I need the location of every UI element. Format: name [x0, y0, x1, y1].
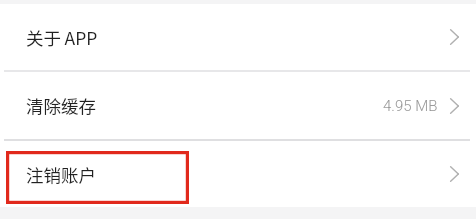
other: Open 注销账户 — [449, 166, 460, 182]
other: Open 关于 APP — [449, 29, 460, 45]
staticText: 清除缓存 — [26, 93, 96, 118]
staticText: 4.95 MB — [383, 97, 438, 115]
staticText: 关于 APP — [26, 25, 98, 50]
button[interactable]: 关于 APP — [0, 4, 476, 70]
other: Open 清除缓存 — [449, 98, 460, 114]
other: Highlighted: 注销账户 — [6, 151, 189, 204]
button[interactable]: 清除缓存 — [0, 72, 476, 139]
staticText: 注销账户 — [26, 162, 96, 187]
button[interactable]: 注销账户 — [0, 141, 476, 207]
